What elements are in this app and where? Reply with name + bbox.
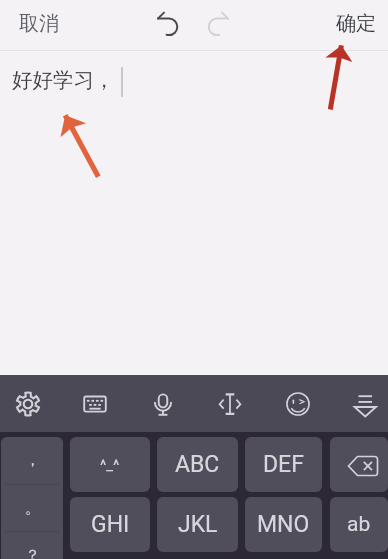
button[interactable]: 确定 [318,1,388,50]
button[interactable]: Voice input [139,375,187,432]
button[interactable]: Keyboard layout [71,375,119,432]
staticText: ab [347,512,371,537]
button[interactable]: Backspace [330,437,388,492]
staticText: ABC [175,451,220,478]
button[interactable]: Redo [198,2,244,48]
staticText: 确定 [336,11,376,36]
button[interactable]: JKL [157,497,238,552]
button[interactable]: ABC [157,437,238,492]
button[interactable]: ， [1,437,63,559]
button[interactable]: Settings [4,375,52,432]
staticText: 。 [25,499,40,518]
button[interactable]: 取消 [0,1,77,50]
button[interactable]: Move cursor [206,375,254,432]
button[interactable]: Hide keyboard [341,375,388,432]
button[interactable]: Undo [142,2,188,48]
button[interactable]: GHI [70,497,150,552]
staticText: ， [25,451,40,470]
button[interactable]: ab [330,497,388,552]
button[interactable]: ^_^ [70,437,150,492]
staticText: JKL [178,511,218,538]
staticText: ？ [25,546,40,559]
staticText: ^_^ [100,456,120,474]
staticText: 好好学习， [12,67,115,93]
button[interactable]: Emoji [274,375,322,432]
staticText: MNO [257,511,310,538]
staticText: 取消 [19,11,59,36]
staticText: DEF [263,451,304,478]
button[interactable]: DEF [245,437,322,492]
staticText: GHI [91,511,130,538]
button[interactable]: MNO [245,497,322,552]
